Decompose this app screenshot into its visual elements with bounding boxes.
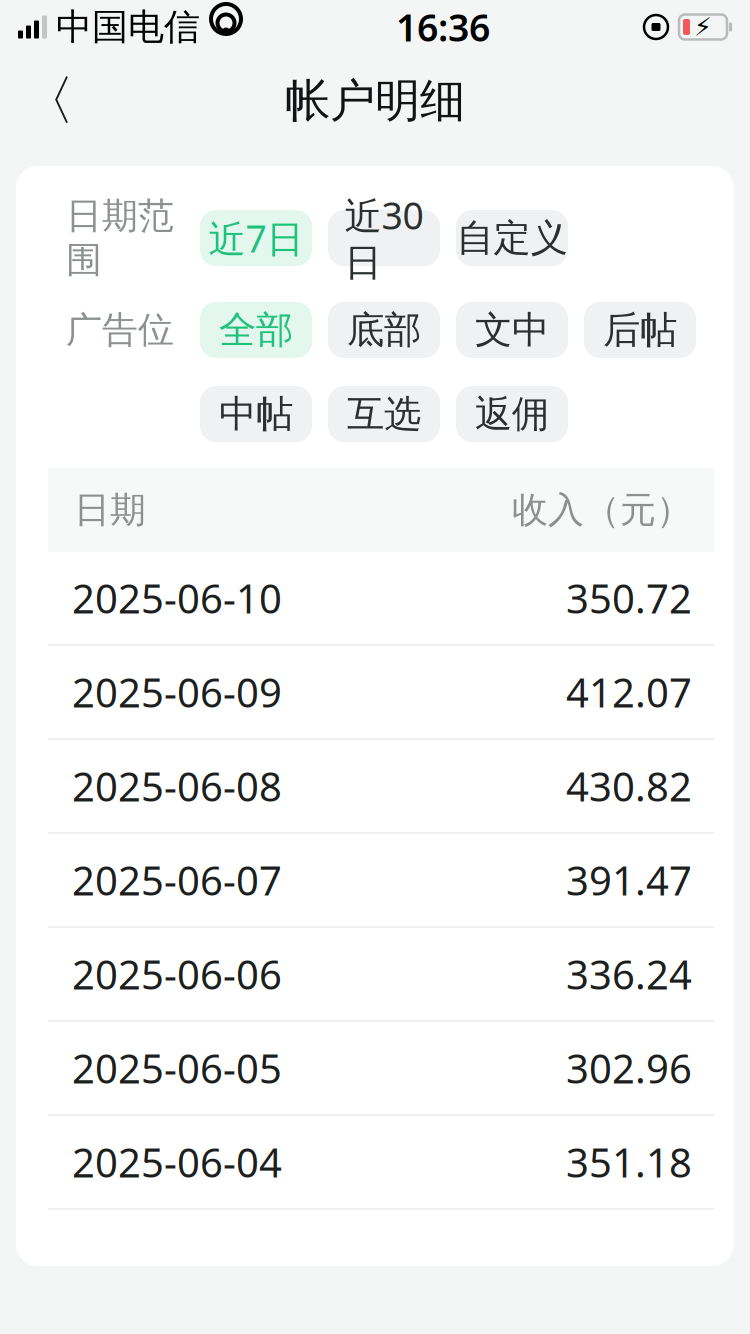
staticText: ⚡︎ [694, 13, 712, 41]
staticText: 336.24 [566, 947, 692, 1000]
staticText: 文中 [475, 307, 549, 353]
staticText: 帐户明细 [285, 73, 465, 129]
staticText: 日期范围 [66, 194, 174, 282]
staticText: 302.96 [566, 1041, 692, 1094]
staticText: 412.07 [566, 665, 692, 718]
staticText: 2025-06-04 [72, 1135, 282, 1188]
staticText: 底部 [347, 307, 421, 353]
button[interactable]: Back [12, 65, 84, 137]
button[interactable]: 中帖 [200, 386, 312, 442]
staticText: 后帖 [603, 307, 677, 353]
staticText: 350.72 [566, 571, 692, 624]
staticText: 430.82 [566, 759, 692, 812]
staticText: 中帖 [219, 391, 293, 437]
staticText: 全部 [219, 307, 293, 353]
button[interactable]: 文中 [456, 302, 568, 358]
staticText: 〈 [21, 68, 74, 134]
staticText: 收入（元） [512, 488, 692, 532]
staticText: 2025-06-10 [72, 571, 282, 624]
staticText: 2025-06-05 [72, 1041, 282, 1094]
button[interactable]: 互选 [328, 386, 440, 442]
button[interactable]: 近30日 [328, 210, 440, 266]
button[interactable]: 后帖 [584, 302, 696, 358]
staticText: 近30日 [344, 190, 423, 286]
staticText: 返佣 [475, 391, 549, 437]
staticText: 16:36 [396, 2, 490, 52]
button[interactable]: 底部 [328, 302, 440, 358]
staticText: 2025-06-08 [72, 759, 282, 812]
staticText: 351.18 [566, 1135, 692, 1188]
staticText: 2025-06-06 [72, 947, 282, 1000]
staticText: 自定义 [456, 215, 567, 261]
staticText: 2025-06-09 [72, 665, 282, 718]
staticText: 日期 [74, 488, 146, 532]
staticText: 互选 [347, 391, 421, 437]
button[interactable]: 近7日 [200, 210, 312, 266]
button[interactable]: 自定义 [456, 210, 568, 266]
button[interactable]: 全部 [200, 302, 312, 358]
staticText: 近7日 [208, 213, 303, 263]
staticText: 2025-06-07 [72, 853, 282, 906]
staticText: 中国电信 [56, 5, 200, 49]
staticText: 391.47 [566, 853, 692, 906]
button[interactable]: 返佣 [456, 386, 568, 442]
staticText: 广告位 [66, 308, 174, 352]
